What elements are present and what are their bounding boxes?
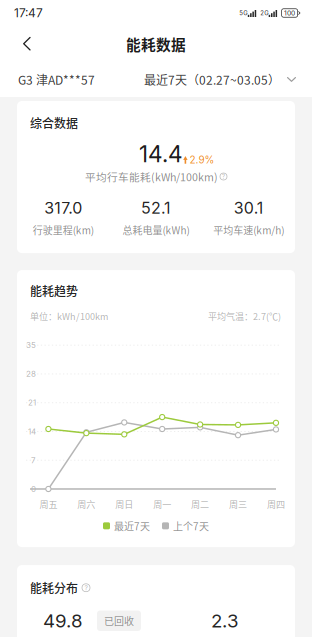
button[interactable]: 最近7天（02.27~03.05） — [144, 65, 296, 94]
staticText: 49.8 — [43, 609, 83, 632]
staticText: 周一 — [153, 497, 171, 510]
button[interactable]: G3 津AD***57 — [18, 65, 95, 94]
staticText: 周日 — [115, 497, 133, 510]
staticText: 2.9% — [189, 154, 214, 166]
staticText: 上个7天 — [173, 519, 209, 533]
staticText: 100 — [284, 9, 295, 17]
staticText: 28 — [26, 369, 36, 379]
staticText: 平均车速(km/h) — [213, 223, 284, 237]
staticText: 317.0 — [44, 198, 82, 218]
staticText: 21 — [28, 398, 36, 408]
staticText: 能耗分布 — [30, 579, 78, 596]
staticText: 14 — [28, 427, 36, 436]
staticText: 7 — [31, 455, 36, 465]
staticText: 30.1 — [234, 198, 264, 218]
staticText: 周三 — [229, 497, 247, 510]
staticText: 最近7天 — [114, 519, 150, 533]
staticText: 2.3 — [211, 609, 239, 632]
staticText: 14.4 — [139, 140, 183, 168]
staticText: 0 — [31, 484, 36, 494]
staticText: ? — [84, 584, 87, 592]
staticText: 周二 — [191, 497, 209, 510]
staticText: 17:47 — [14, 6, 43, 20]
staticText: 能耗趋势 — [30, 282, 78, 299]
staticText: 平均行车能耗(kWh/100km) — [85, 169, 218, 184]
staticText: 最近7天（02.27~03.05） — [144, 71, 280, 88]
staticText: 52.1 — [141, 198, 171, 218]
staticText: 能耗数据 — [126, 33, 186, 55]
staticText: 总耗电量(kWh) — [122, 223, 189, 237]
staticText: 综合数据 — [30, 114, 78, 131]
staticText: 周六 — [77, 497, 95, 510]
staticText: 5G — [239, 9, 247, 17]
staticText: 行驶里程(km) — [33, 223, 94, 237]
staticText: 2G — [260, 9, 268, 17]
staticText: 单位：kWh/100km — [30, 309, 108, 323]
staticText: ? — [222, 173, 225, 180]
staticText: 周四 — [267, 497, 285, 510]
staticText: 35 — [26, 340, 36, 350]
staticText: 周五 — [39, 497, 57, 510]
button[interactable]: 返回 — [8, 27, 46, 61]
staticText: G3 津AD***57 — [18, 71, 95, 88]
staticText: 平均气温：2.7(℃) — [208, 309, 281, 323]
staticText: 已回收 — [104, 613, 134, 628]
